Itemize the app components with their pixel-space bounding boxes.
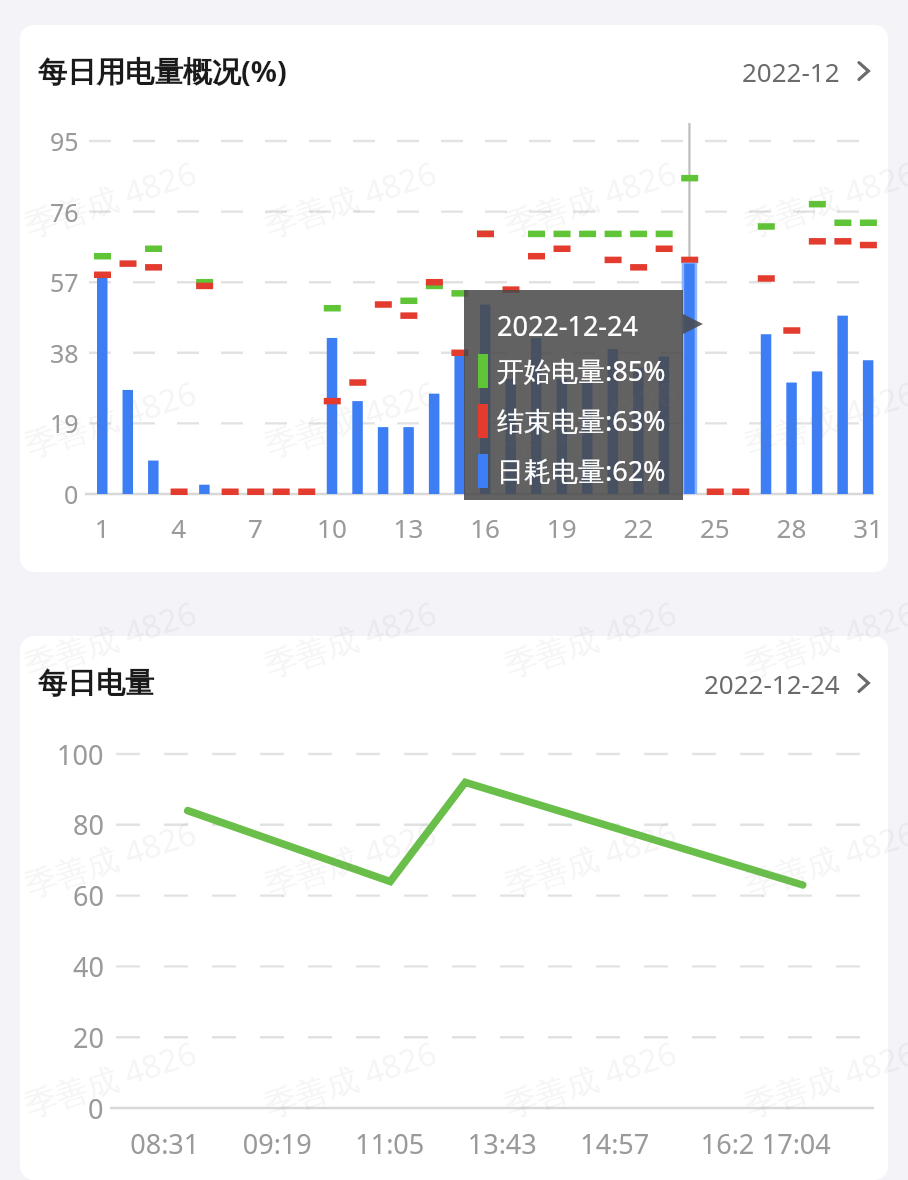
staticText: 2022-12-24 (704, 666, 840, 701)
other: Next day (854, 669, 874, 697)
other: Next month (854, 57, 874, 85)
staticText: 2022-12 (742, 54, 840, 89)
button[interactable]: 每日电量 (20, 636, 888, 730)
staticText: 每日用电量概况(%) (38, 51, 287, 91)
staticText: 每日电量 (38, 665, 154, 702)
button[interactable]: 每日用电量概况(%) (20, 25, 888, 117)
